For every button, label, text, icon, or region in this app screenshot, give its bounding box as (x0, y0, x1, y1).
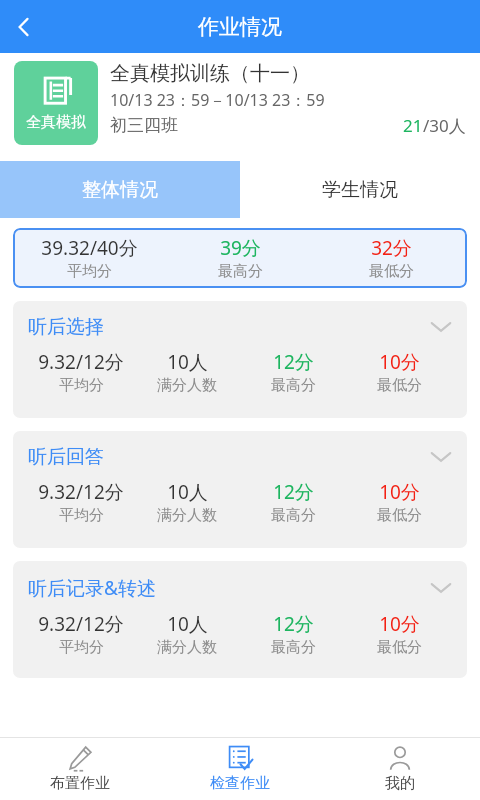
staticText: 听后回答 (28, 445, 104, 469)
staticText: 39.32/40分 (41, 235, 138, 261)
staticText: 12分 (273, 611, 314, 637)
staticText: 满分人数 (157, 506, 217, 525)
staticText: 平均分 (59, 376, 104, 395)
staticText: 满分人数 (157, 376, 217, 395)
staticText: 10人 (167, 349, 208, 375)
staticText: 初三四班 (110, 115, 178, 136)
staticText: 39分 (220, 235, 261, 261)
staticText: 我的 (385, 774, 415, 793)
staticText: 21 (403, 114, 423, 137)
staticText: 平均分 (67, 262, 112, 281)
staticText: 学生情况 (322, 178, 398, 202)
staticText: 10人 (167, 611, 208, 637)
staticText: 12分 (273, 349, 314, 375)
staticText: 最低分 (377, 376, 422, 395)
staticText: 全真模拟 (26, 113, 86, 132)
staticText: 12分 (273, 479, 314, 505)
staticText: 10分 (379, 349, 420, 375)
staticText: 最高分 (271, 506, 316, 525)
staticText: 最高分 (271, 376, 316, 395)
button[interactable]: 布置作业 (0, 738, 160, 800)
staticText: 听后选择 (28, 315, 104, 339)
button[interactable]: 听后回答 (13, 431, 467, 548)
staticText: 全真模拟训练（十一） (110, 61, 310, 86)
staticText: 布置作业 (50, 774, 110, 793)
staticText: 32分 (371, 235, 412, 261)
button[interactable]: 学生情况 (240, 161, 480, 218)
staticText: 10/13 23：59－10/13 23：59 (110, 89, 325, 111)
staticText: 10人 (167, 479, 208, 505)
button[interactable]: 听后选择 (13, 301, 467, 418)
staticText: 听后记录&转述 (28, 575, 156, 601)
button[interactable]: 听后记录&转述 (13, 561, 467, 678)
staticText: 最低分 (377, 638, 422, 657)
staticText: /30人 (423, 114, 466, 137)
button[interactable]: 检查作业 (160, 738, 320, 800)
staticText: 最高分 (271, 638, 316, 657)
staticText: 平均分 (59, 638, 104, 657)
staticText: 最低分 (369, 262, 414, 281)
button[interactable]: 39.32/40分 (13, 228, 467, 288)
staticText: 10分 (379, 611, 420, 637)
button[interactable]: 我的 (320, 738, 480, 800)
button[interactable]: 整体情况 (0, 161, 240, 218)
staticText: 9.32/12分 (38, 349, 124, 375)
staticText: 10分 (379, 479, 420, 505)
staticText: 9.32/12分 (38, 611, 124, 637)
staticText: 整体情况 (82, 178, 158, 202)
staticText: 检查作业 (210, 774, 270, 793)
staticText: 平均分 (59, 506, 104, 525)
button[interactable]: Back (0, 3, 48, 51)
staticText: 9.32/12分 (38, 479, 124, 505)
staticText: 最低分 (377, 506, 422, 525)
staticText: 满分人数 (157, 638, 217, 657)
staticText: 作业情况 (198, 14, 282, 40)
staticText: 最高分 (218, 262, 263, 281)
